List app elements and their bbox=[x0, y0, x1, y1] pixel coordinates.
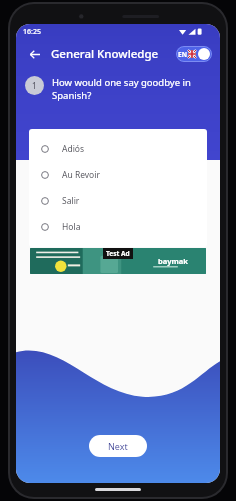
button[interactable]: Back bbox=[22, 42, 46, 66]
button[interactable]: Test Ad bbox=[30, 248, 206, 274]
staticText: 1 bbox=[32, 80, 37, 91]
staticText: Au Revoir bbox=[62, 169, 100, 181]
staticText: How would one say goodbye in Spanish? bbox=[52, 76, 206, 102]
staticText: Hola bbox=[62, 221, 81, 233]
button[interactable]: Adiós bbox=[29, 136, 207, 162]
staticText: Test Ad bbox=[106, 249, 130, 258]
button[interactable]: Hola bbox=[29, 214, 207, 240]
staticText: EN bbox=[178, 50, 187, 59]
button[interactable]: Salir bbox=[29, 188, 207, 214]
button[interactable]: Switch language bbox=[176, 46, 212, 62]
staticText: 16:25 bbox=[23, 27, 41, 37]
staticText: Salir bbox=[62, 195, 80, 207]
button[interactable]: Au Revoir bbox=[29, 162, 207, 188]
button[interactable]: Next bbox=[89, 435, 147, 457]
staticText: baymak bbox=[158, 256, 188, 266]
staticText: Adiós bbox=[62, 143, 85, 155]
staticText: Next bbox=[108, 440, 128, 452]
staticText: General Knowledge bbox=[51, 46, 159, 62]
